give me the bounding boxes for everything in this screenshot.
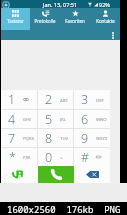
staticText: 1600x2560 176kb PNG xyxy=(7,203,121,215)
staticText: 3 xyxy=(81,91,89,108)
button[interactable]: 2 xyxy=(38,90,74,109)
staticText: WXYZ xyxy=(96,135,108,141)
staticText: P,W xyxy=(23,154,30,160)
button[interactable]: 4 xyxy=(1,110,38,128)
staticText: MNO xyxy=(96,116,107,122)
staticText: 0 xyxy=(45,149,53,166)
staticText: Favoriten xyxy=(65,18,85,24)
staticText: 1 xyxy=(8,91,16,108)
staticText: + xyxy=(60,154,63,160)
staticText: PQRS xyxy=(23,135,34,141)
staticText: 5 xyxy=(45,111,53,128)
staticText: Kontakte xyxy=(96,18,115,24)
staticText: Tastatur xyxy=(7,18,24,24)
staticText: 6 xyxy=(81,111,89,128)
staticText: # xyxy=(81,149,90,166)
staticText: 4 xyxy=(8,111,16,128)
staticText: Protokolle xyxy=(34,18,56,24)
button[interactable]: Tastatur xyxy=(1,8,30,30)
staticText: JKL xyxy=(60,116,67,122)
staticText: 8 xyxy=(45,130,53,147)
staticText: ABC xyxy=(60,97,69,103)
staticText: TUV xyxy=(60,135,69,141)
button[interactable]: Protokolle xyxy=(30,8,60,30)
staticText: GHI xyxy=(23,116,31,122)
staticText: DEF xyxy=(96,97,104,103)
button[interactable]: 0 xyxy=(38,148,74,166)
button[interactable]: 1 xyxy=(1,90,38,109)
button[interactable]: 6 xyxy=(74,110,110,128)
button[interactable]: Add to contacts xyxy=(1,166,38,183)
button[interactable]: 7 xyxy=(1,129,38,147)
staticText: * xyxy=(9,149,16,166)
staticText: Jan. 13, 07:51 xyxy=(43,1,78,8)
button[interactable]: More options xyxy=(107,30,118,40)
staticText: 7 xyxy=(8,130,16,147)
staticText: 9 xyxy=(81,130,89,147)
button[interactable]: 9 xyxy=(74,129,110,147)
button[interactable]: 3 xyxy=(74,90,110,109)
button[interactable]: Favoriten xyxy=(60,8,90,30)
staticText: 2 xyxy=(45,91,53,108)
button[interactable]: * xyxy=(1,148,38,166)
button[interactable]: Call xyxy=(38,166,74,183)
staticText: 92% xyxy=(99,1,110,8)
button[interactable]: Backspace xyxy=(74,166,110,183)
button[interactable]: Kontakte xyxy=(90,8,120,30)
button[interactable]: 8 xyxy=(38,129,74,147)
button[interactable]: # xyxy=(74,148,110,166)
button[interactable]: 5 xyxy=(38,110,74,128)
